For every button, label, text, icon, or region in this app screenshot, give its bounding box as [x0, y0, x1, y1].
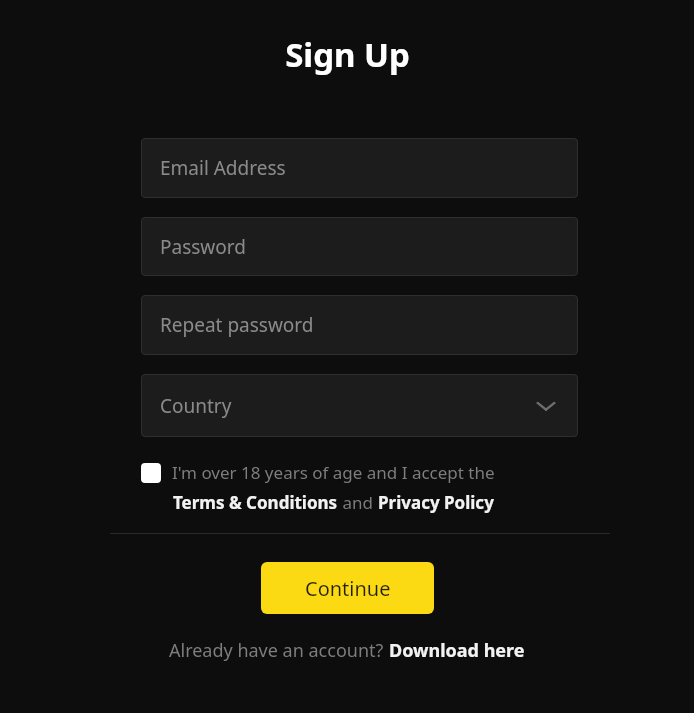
staticText: and [338, 491, 378, 514]
staticText: Repeat password [160, 312, 314, 338]
button[interactable]: Continue [261, 562, 434, 614]
staticText: Country [160, 393, 232, 419]
button[interactable]: Repeat password [141, 295, 578, 355]
button[interactable]: Download here [389, 638, 525, 663]
staticText: Sign Up [285, 32, 410, 77]
staticText: Password [160, 234, 246, 260]
staticText: Continue [305, 575, 391, 602]
button[interactable]: Terms & Conditions [173, 491, 338, 514]
button[interactable]: Password [141, 217, 578, 276]
button[interactable]: Accept terms checkbox [141, 461, 578, 514]
button[interactable]: Email Address [141, 138, 578, 198]
other: Accept terms checkbox [141, 463, 161, 483]
button[interactable]: Privacy Policy [378, 491, 494, 514]
staticText: I'm over 18 years of age and I accept th… [172, 461, 495, 484]
button[interactable]: Country [141, 374, 578, 437]
staticText: Email Address [160, 155, 286, 181]
staticText: Already have an account? [169, 638, 389, 663]
